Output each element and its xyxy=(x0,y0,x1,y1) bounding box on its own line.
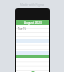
button[interactable]: Add event xyxy=(31,71,35,72)
button[interactable]: August 2023 xyxy=(16,20,49,25)
staticText: Made with Figma xyxy=(20,3,45,7)
staticText: August 2023 xyxy=(24,21,42,25)
staticText: Tue 15 xyxy=(18,27,27,31)
